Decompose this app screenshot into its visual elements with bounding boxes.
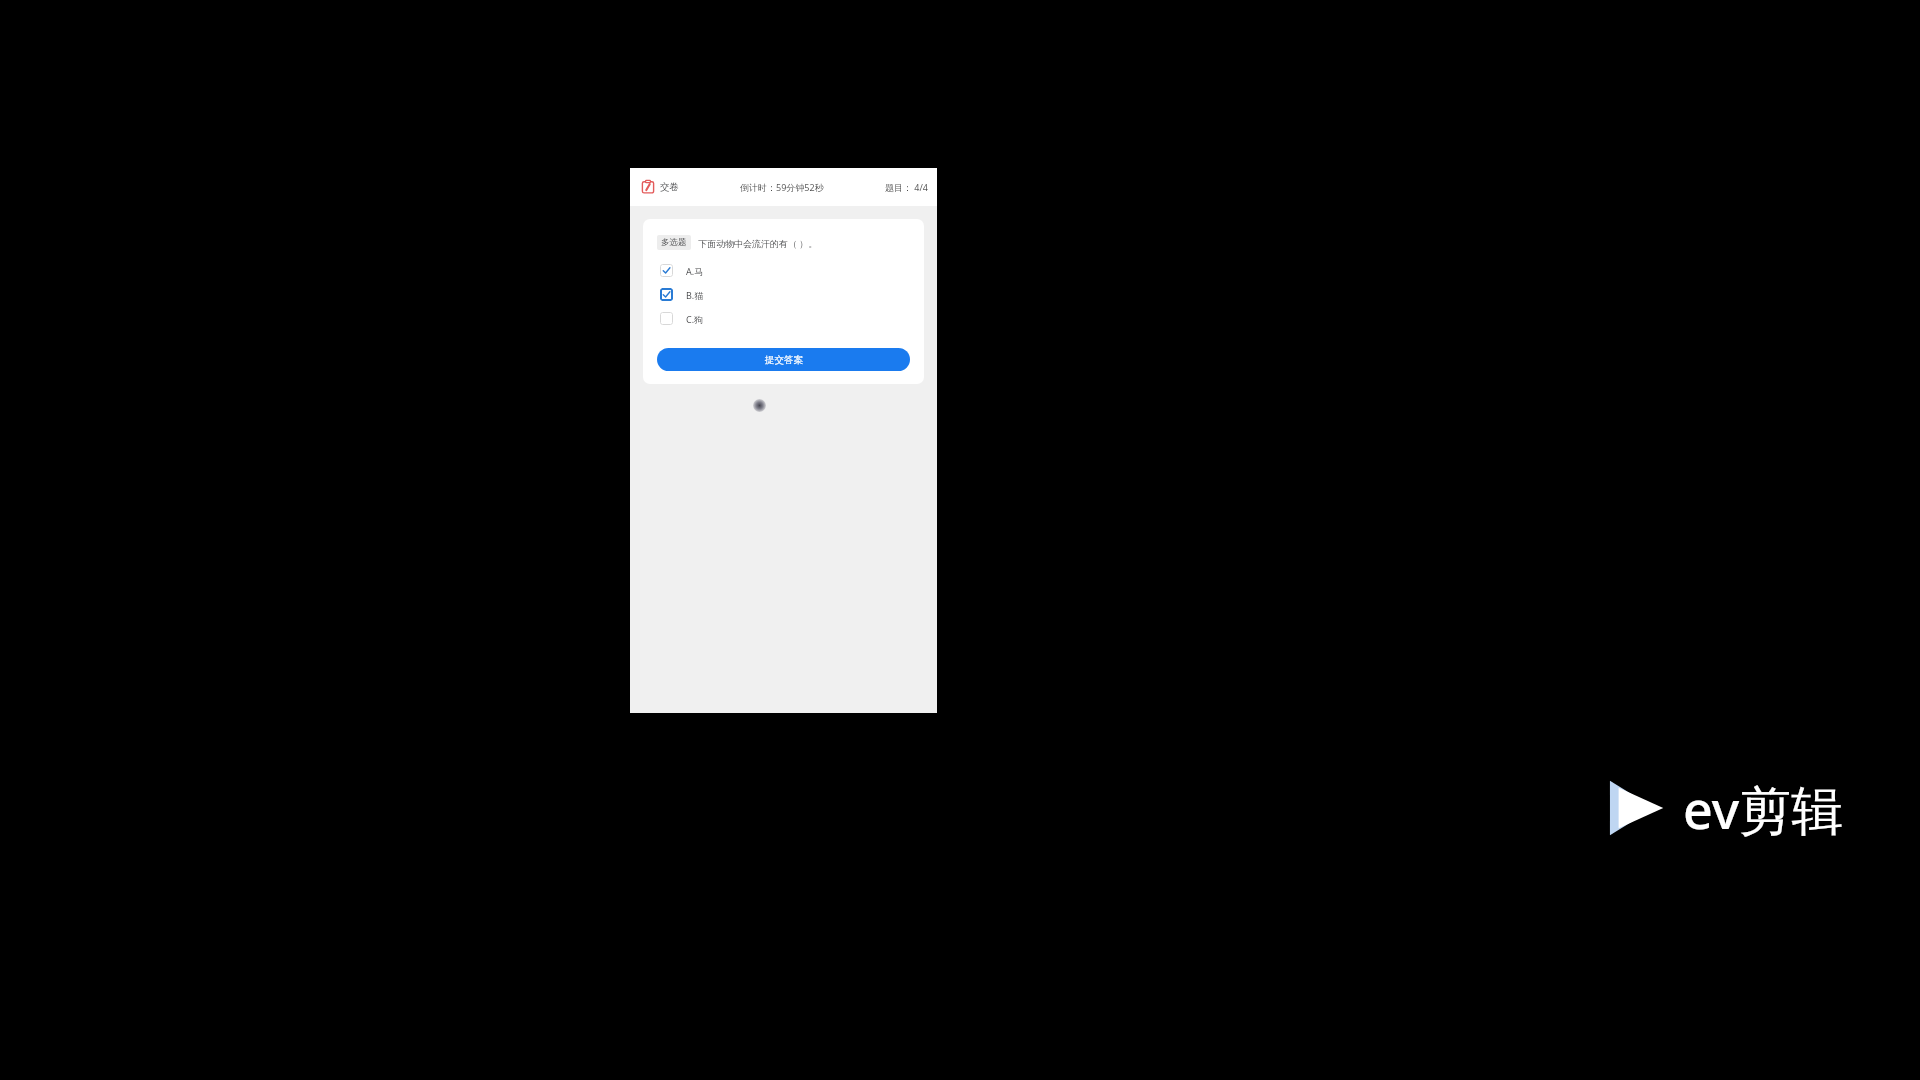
- button[interactable]: A.马: [657, 264, 910, 277]
- other: 交卷: [641, 180, 655, 194]
- staticText: 提交答案: [765, 354, 803, 366]
- button[interactable]: 交卷: [639, 176, 681, 198]
- staticText: 多选题: [661, 237, 687, 248]
- button[interactable]: C.狗: [657, 312, 910, 325]
- button[interactable]: 提交答案: [657, 348, 910, 371]
- staticText: 题目： 4/4: [885, 181, 928, 193]
- button[interactable]: B.猫: [657, 288, 910, 301]
- staticText: 下面动物中会流汗的有（ ）。: [698, 237, 818, 249]
- staticText: C.狗: [686, 313, 704, 325]
- staticText: A.马: [686, 265, 704, 277]
- other: EV剪辑 logo: [1597, 772, 1669, 844]
- staticText: 倒计时：59分钟52秒: [740, 181, 824, 193]
- staticText: ev剪辑: [1683, 773, 1844, 844]
- staticText: 交卷: [660, 181, 679, 193]
- staticText: B.猫: [686, 289, 704, 301]
